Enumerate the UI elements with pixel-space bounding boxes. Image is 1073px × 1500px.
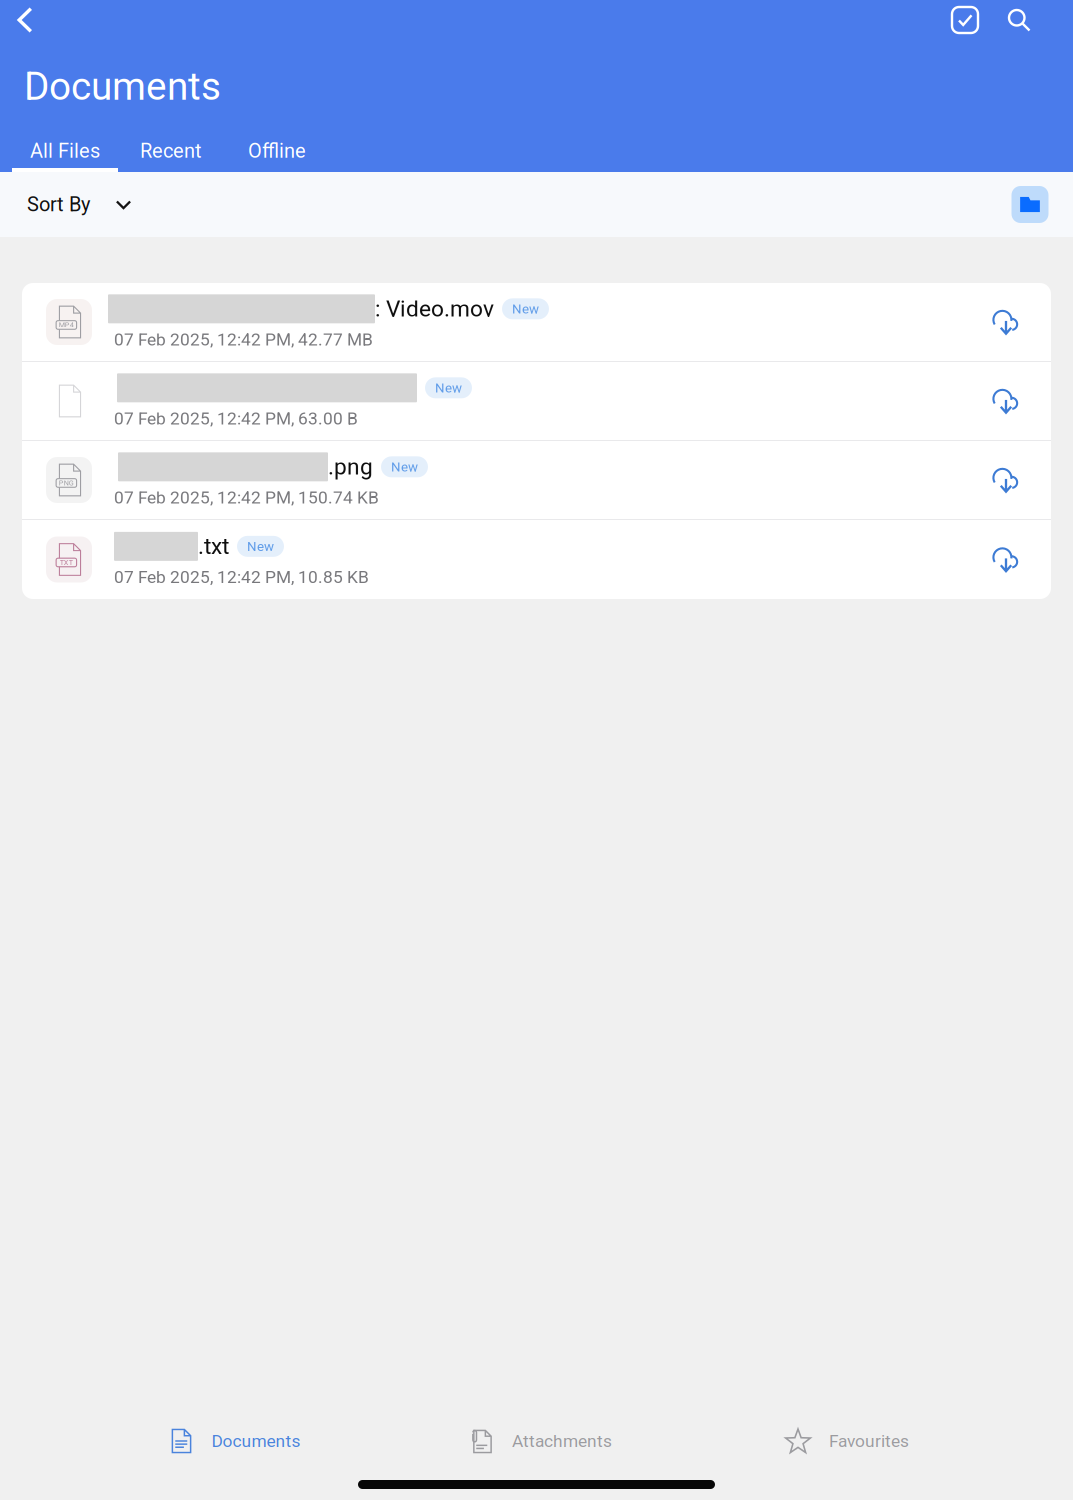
staticText: MP4: [59, 321, 74, 329]
staticText: : Video.mov: [375, 296, 494, 322]
staticText: Recent: [140, 139, 202, 163]
staticText: Attachments: [512, 1431, 612, 1451]
staticText: Favourites: [829, 1431, 909, 1451]
button[interactable]: Sort By: [0, 179, 147, 230]
staticText: New: [512, 301, 539, 317]
staticText: Sort By: [27, 193, 90, 216]
button[interactable]: Download: [974, 290, 1038, 354]
button[interactable]: Download: [974, 369, 1038, 433]
staticText: Offline: [248, 139, 306, 163]
button[interactable]: New folder: [1000, 174, 1060, 234]
staticText: New: [435, 380, 462, 396]
staticText: TXT: [60, 558, 73, 567]
button[interactable]: Documents: [82, 1414, 388, 1468]
staticText: .txt: [198, 533, 229, 560]
staticText: All Files: [30, 139, 100, 163]
button[interactable]: Download: [974, 448, 1038, 512]
staticText: New: [391, 459, 418, 475]
button[interactable]: Offline: [224, 140, 330, 172]
staticText: 07 Feb 2025, 12:42 PM, 63.00 B: [114, 408, 358, 429]
staticText: PNG: [59, 479, 74, 487]
button[interactable]: Download: [974, 527, 1038, 591]
button[interactable]: Search: [992, 0, 1046, 40]
button[interactable]: All Files: [12, 140, 118, 172]
staticText: 07 Feb 2025, 12:42 PM, 150.74 KB: [114, 487, 379, 508]
staticText: Documents: [24, 64, 221, 109]
staticText: .png: [328, 454, 373, 480]
staticText: 07 Feb 2025, 12:42 PM, 10.85 KB: [114, 567, 369, 587]
button[interactable]: Select all: [938, 0, 992, 40]
button[interactable]: Back: [0, 0, 50, 40]
staticText: 07 Feb 2025, 12:42 PM, 42.77 MB: [114, 329, 373, 350]
button[interactable]: Recent: [118, 140, 224, 172]
staticText: New: [247, 538, 274, 554]
button[interactable]: Attachments: [388, 1414, 694, 1468]
button[interactable]: Favourites: [694, 1414, 1000, 1468]
staticText: Documents: [211, 1431, 300, 1451]
